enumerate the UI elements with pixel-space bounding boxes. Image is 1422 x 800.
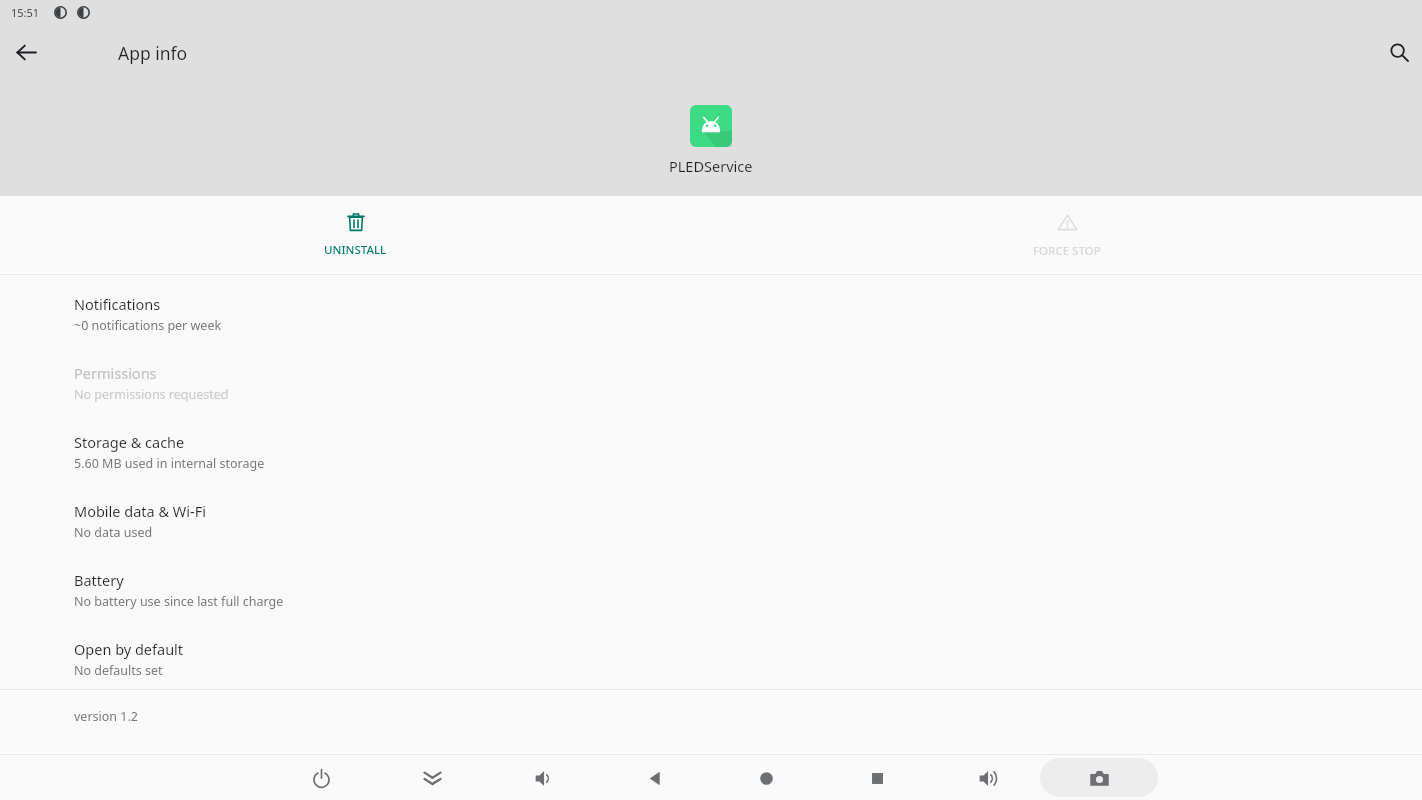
button[interactable]: Permissions [0,346,1422,415]
staticText: PLEDService [669,156,753,176]
button[interactable]: Volume up [966,756,1010,800]
button[interactable]: Search [1376,29,1422,75]
staticText: Mobile data & Wi-Fi [74,501,207,521]
button[interactable]: Recent apps [855,756,899,800]
staticText: version 1.2 [74,708,138,725]
button[interactable]: Battery [0,553,1422,622]
button[interactable]: Back [633,756,677,800]
button[interactable]: Notifications [0,277,1422,346]
button[interactable]: Screenshot [1077,756,1121,800]
staticText: No defaults set [74,662,163,679]
button[interactable]: FORCE STOP [985,202,1149,269]
staticText: Open by default [74,639,184,659]
staticText: No permissions requested [74,386,229,403]
button[interactable]: UNINSTALL [276,202,435,268]
button[interactable]: Volume down [522,756,566,800]
button[interactable]: Power [299,756,343,800]
staticText: No data used [74,524,153,541]
staticText: Storage & cache [74,432,185,452]
staticText: Notifications [74,294,161,314]
staticText: ~0 notifications per week [74,317,222,334]
button[interactable]: Open by default [0,622,1422,691]
button[interactable]: Notification shade [410,756,454,800]
staticText: FORCE STOP [1033,243,1101,259]
staticText: No battery use since last full charge [74,593,284,610]
staticText: App info [118,41,188,65]
button[interactable]: Back [3,29,49,75]
button[interactable]: Home [744,756,788,800]
staticText: 5.60 MB used in internal storage [74,455,265,472]
staticText: Battery [74,570,124,590]
staticText: 15:51 [11,5,40,20]
button[interactable]: Storage & cache [0,415,1422,484]
staticText: Permissions [74,363,157,383]
staticText: UNINSTALL [324,242,387,258]
button[interactable]: Mobile data & Wi-Fi [0,484,1422,553]
